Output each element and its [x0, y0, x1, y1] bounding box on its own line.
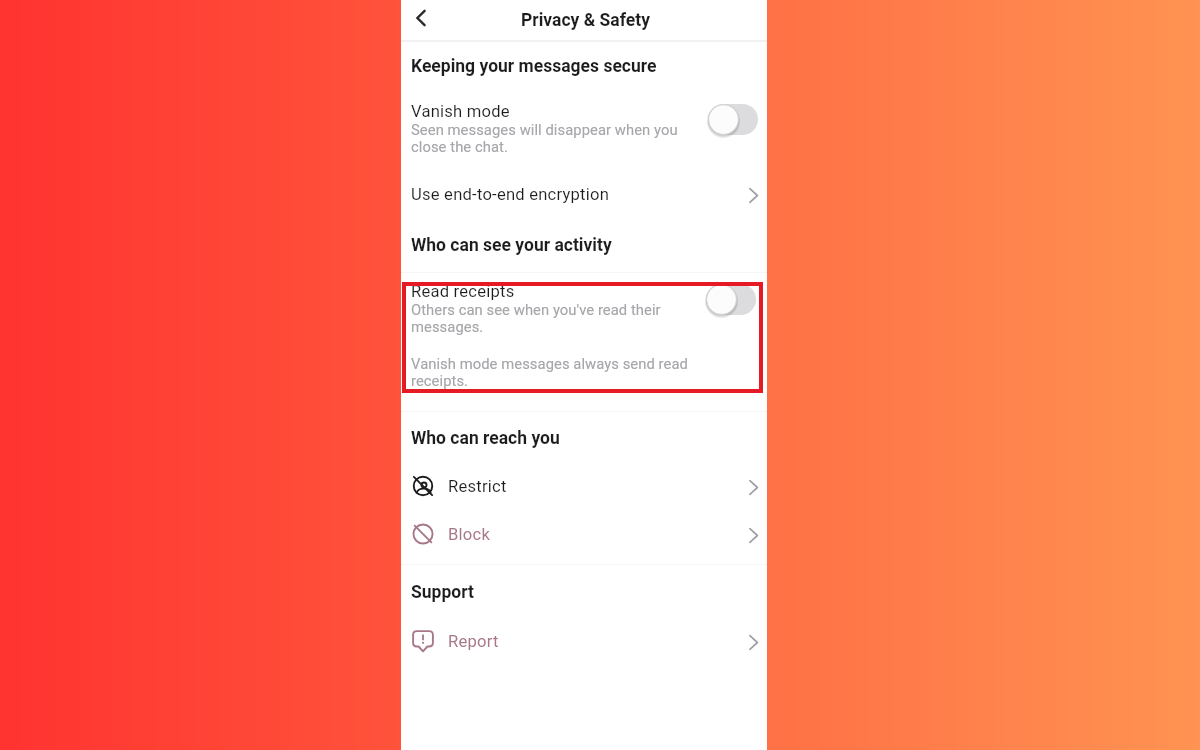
- button[interactable]: Vanish mode toggle: [708, 103, 760, 137]
- staticText: Block: [448, 525, 491, 544]
- staticText: Restrict: [448, 477, 507, 496]
- staticText: Privacy & Safety: [521, 10, 650, 31]
- button[interactable]: Use end-to-end encryption: [401, 181, 767, 215]
- button[interactable]: Report: [401, 617, 767, 665]
- staticText: Seen messages will disappear when you cl…: [411, 121, 678, 155]
- staticText: Who can see your activity: [411, 235, 612, 256]
- staticText: Report: [448, 632, 499, 651]
- button[interactable]: Block: [401, 510, 767, 558]
- button[interactable]: Read receipts: [402, 282, 763, 393]
- staticText: Use end-to-end encryption: [411, 185, 610, 204]
- button[interactable]: Back: [404, 1, 438, 35]
- staticText: Keeping your messages secure: [411, 56, 657, 77]
- staticText: Support: [411, 582, 474, 603]
- button[interactable]: Restrict: [401, 462, 767, 510]
- staticText: Read receipts: [411, 282, 515, 301]
- button[interactable]: Vanish mode: [401, 100, 767, 164]
- staticText: Vanish mode messages always send read re…: [411, 355, 688, 389]
- button[interactable]: Read receipts toggle: [706, 283, 758, 317]
- staticText: Others can see when you've read their me…: [411, 301, 661, 335]
- staticText: Who can reach you: [411, 428, 560, 449]
- staticText: Vanish mode: [411, 102, 510, 121]
